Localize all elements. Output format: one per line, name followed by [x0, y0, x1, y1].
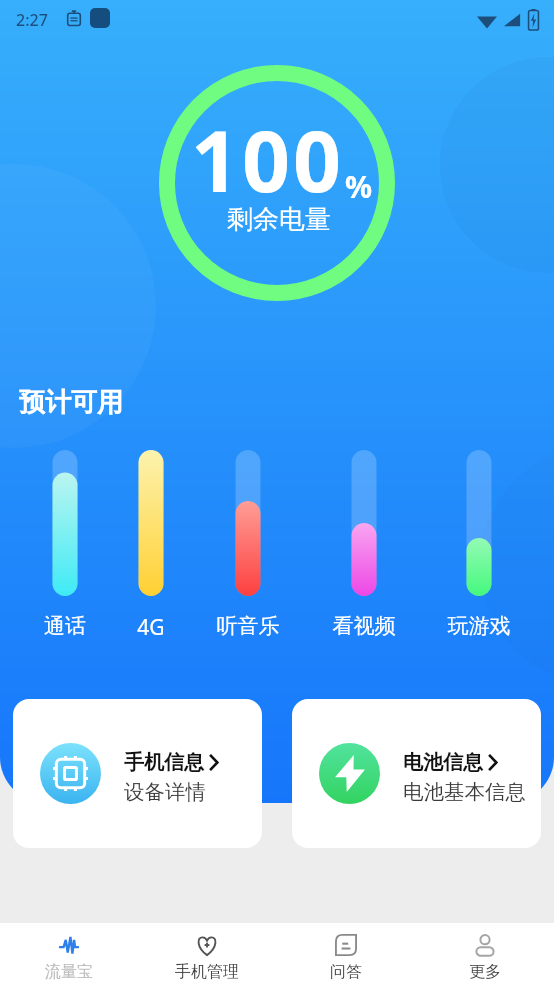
- staticText: 更多: [469, 962, 501, 982]
- staticText: 通话: [15, 613, 115, 639]
- button[interactable]: 电池信息: [292, 699, 541, 848]
- staticText: 电池基本信息: [403, 779, 526, 805]
- staticText: 电池信息: [403, 750, 483, 775]
- staticText: 剩余电量: [161, 203, 397, 236]
- staticText: 看视频: [314, 613, 414, 639]
- button[interactable]: 手机信息: [13, 699, 262, 848]
- staticText: 玩游戏: [429, 613, 529, 639]
- staticText: 流量宝: [45, 962, 93, 982]
- button[interactable]: 问答: [276, 923, 415, 984]
- staticText: 预计可用: [19, 386, 123, 419]
- staticText: 手机管理: [175, 962, 239, 982]
- staticText: 听音乐: [198, 613, 298, 639]
- staticText: 100: [191, 102, 345, 216]
- button[interactable]: 更多: [415, 923, 554, 984]
- staticText: 2:27: [16, 9, 48, 31]
- button[interactable]: 手机管理: [138, 923, 276, 984]
- staticText: 4G: [101, 613, 201, 642]
- button[interactable]: 流量宝: [0, 923, 138, 984]
- staticText: %: [345, 166, 373, 207]
- staticText: 设备详情: [124, 779, 206, 805]
- staticText: 手机信息: [124, 750, 204, 775]
- staticText: 问答: [330, 962, 362, 982]
